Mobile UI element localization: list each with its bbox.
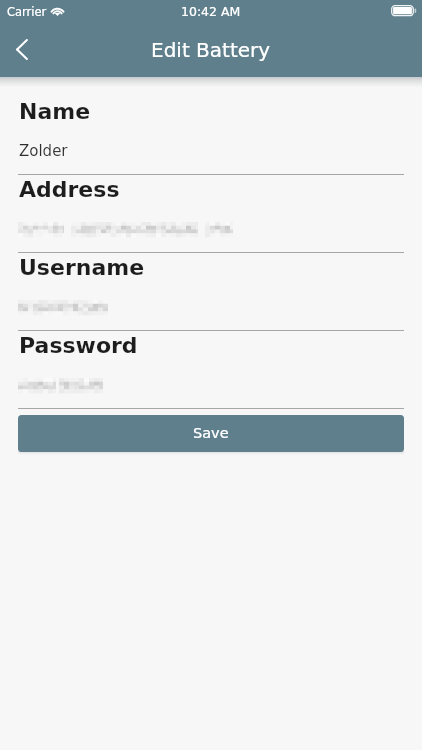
staticText: Password: [19, 333, 138, 359]
button[interactable]: Address: [18, 211, 404, 253]
staticText: Username: [19, 255, 145, 281]
button[interactable]: Back: [0, 27, 44, 71]
staticText: Carrier: [7, 5, 47, 18]
staticText: Address: [19, 177, 120, 203]
staticText: Save: [193, 425, 229, 442]
staticText: Zolder: [19, 142, 68, 159]
button[interactable]: Password: [18, 367, 404, 409]
button[interactable]: Save: [18, 415, 404, 452]
staticText: Name: [19, 99, 91, 125]
staticText: Edit Battery: [151, 38, 271, 61]
staticText: 10:42 AM: [181, 4, 241, 19]
button[interactable]: Username: [18, 289, 404, 331]
button[interactable]: Name: [18, 133, 404, 175]
